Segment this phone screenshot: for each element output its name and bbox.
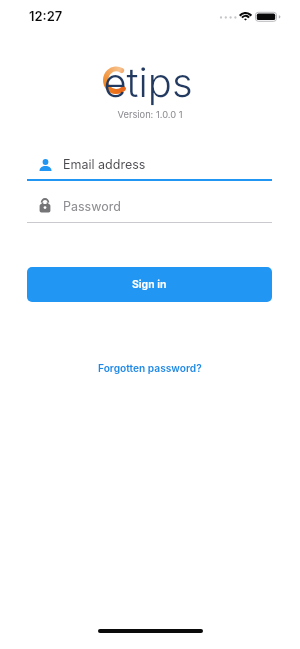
staticText: Version: 1.0.0 1 [0,109,300,120]
button[interactable]: Email address [27,150,272,181]
button[interactable]: Sign in [27,267,272,302]
button[interactable]: Forgotten password? [98,362,202,374]
staticText: Sign in [132,278,167,291]
staticText: Email address [63,157,146,172]
staticText: Password [63,199,121,214]
staticText: etips [0,58,298,106]
button[interactable]: Password [27,192,272,223]
staticText: Forgotten password? [98,362,202,374]
staticText: 12:27 [29,8,63,24]
